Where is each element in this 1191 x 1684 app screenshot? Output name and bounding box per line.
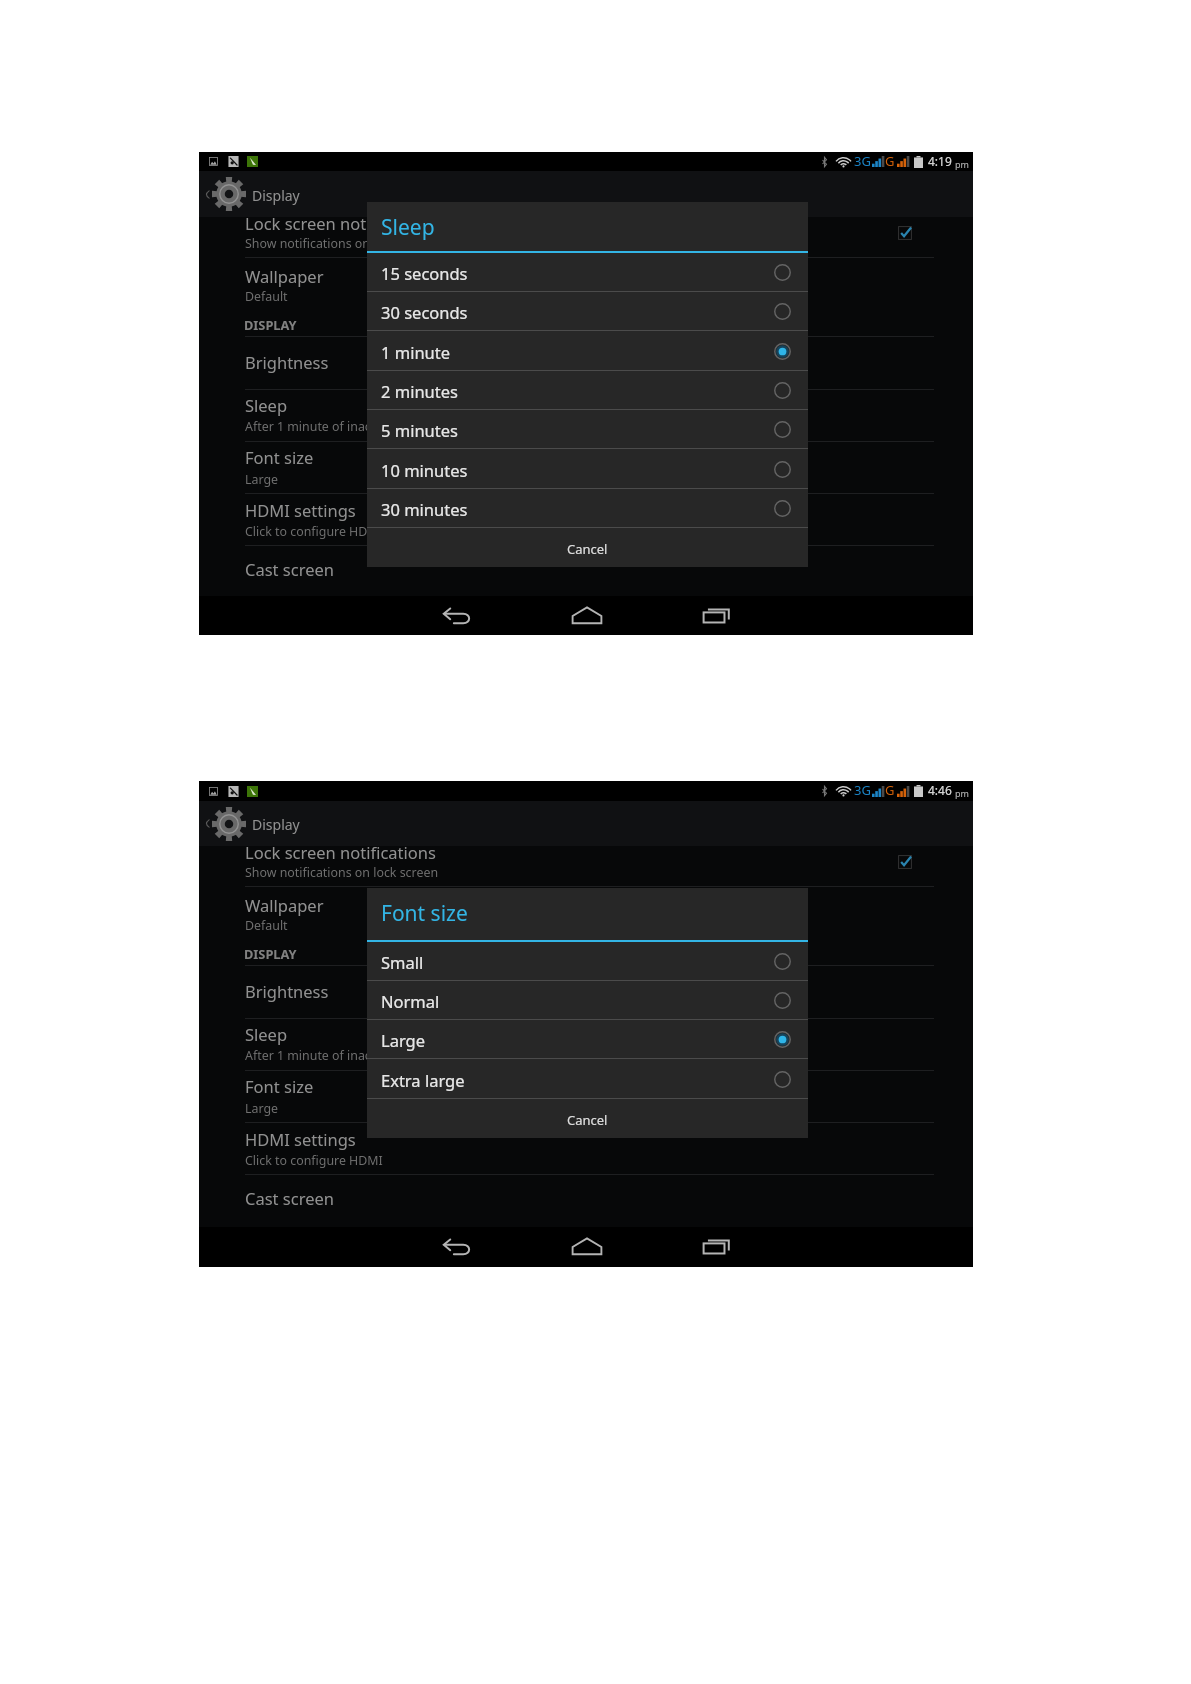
- button[interactable]: Cast screen: [199, 546, 973, 596]
- button[interactable]: Normal: [367, 981, 808, 1020]
- button[interactable]: Font size: [199, 1071, 973, 1123]
- button[interactable]: Recent apps: [652, 596, 783, 635]
- button[interactable]: Brightness: [199, 336, 973, 390]
- staticText: Font size: [245, 1075, 314, 1097]
- staticText: Extra large: [381, 1069, 465, 1091]
- staticText: Cast screen: [245, 1187, 334, 1209]
- button[interactable]: Large: [367, 1020, 808, 1059]
- button[interactable]: Wallpaper: [199, 258, 973, 302]
- staticText: Font size: [245, 446, 314, 468]
- staticText: HDMI settings: [245, 1128, 356, 1150]
- staticText: Large: [381, 1029, 426, 1051]
- staticText: G: [885, 781, 895, 799]
- button[interactable]: Small: [367, 942, 808, 981]
- staticText: 30 minutes: [381, 498, 468, 520]
- button[interactable]: Lock screen notifications: [199, 217, 973, 258]
- button[interactable]: Cancel: [367, 528, 808, 567]
- staticText: 3G: [854, 152, 871, 170]
- staticText: Wallpaper: [245, 894, 324, 916]
- button[interactable]: 15 seconds: [367, 253, 808, 292]
- staticText: Click to configure HDMI: [245, 523, 383, 540]
- button[interactable]: Back: [390, 596, 521, 635]
- staticText: Small: [381, 951, 424, 973]
- button[interactable]: 5 minutes: [367, 410, 808, 449]
- button[interactable]: Back: [390, 1227, 521, 1267]
- staticText: 30 seconds: [381, 301, 468, 323]
- button[interactable]: Recent apps: [652, 1227, 783, 1267]
- staticText: 4:46: [928, 782, 952, 798]
- staticText: DISPLAY: [244, 945, 297, 962]
- button[interactable]: 2 minutes: [367, 371, 808, 410]
- staticText: Large: [245, 471, 279, 488]
- staticText: HDMI settings: [245, 499, 356, 521]
- button[interactable]: 10 minutes: [367, 450, 808, 489]
- button[interactable]: Home: [521, 596, 652, 635]
- button[interactable]: Cast screen: [199, 1175, 973, 1227]
- staticText: G: [885, 152, 895, 170]
- staticText: 10 minutes: [381, 459, 468, 481]
- staticText: DISPLAY: [244, 316, 297, 333]
- button[interactable]: Brightness: [199, 965, 973, 1019]
- button[interactable]: HDMI settings: [199, 493, 973, 546]
- staticText: Wallpaper: [245, 265, 324, 287]
- staticText: Default: [245, 917, 288, 934]
- staticText: Brightness: [245, 351, 329, 373]
- button[interactable]: Wallpaper: [199, 887, 973, 931]
- button[interactable]: 30 seconds: [367, 292, 808, 331]
- staticText: 1 minute: [381, 341, 451, 363]
- staticText: 3G: [854, 781, 871, 799]
- staticText: 15 seconds: [381, 262, 468, 284]
- staticText: Sleep: [245, 1023, 288, 1045]
- staticText: Brightness: [245, 980, 329, 1002]
- staticText: pm: [955, 158, 969, 170]
- staticText: Normal: [381, 990, 440, 1012]
- staticText: Default: [245, 288, 288, 305]
- button[interactable]: Home: [521, 1227, 652, 1267]
- staticText: 4:19: [928, 153, 952, 169]
- button[interactable]: Extra large: [367, 1060, 808, 1099]
- button[interactable]: Cancel: [367, 1099, 808, 1138]
- button[interactable]: Sleep: [199, 1019, 973, 1071]
- staticText: Display: [252, 186, 300, 205]
- staticText: Cast screen: [245, 558, 334, 580]
- button[interactable]: 30 minutes: [367, 489, 808, 528]
- staticText: 5 minutes: [381, 419, 458, 441]
- staticText: After 1 minute of inactivity: [245, 418, 399, 435]
- button[interactable]: Font size: [199, 442, 973, 494]
- button[interactable]: Lock screen notifications: [199, 846, 973, 887]
- staticText: Large: [245, 1100, 279, 1117]
- staticText: After 1 minute of inactivity: [245, 1047, 399, 1064]
- staticText: Cancel: [567, 1111, 608, 1129]
- button[interactable]: Display: [199, 171, 973, 217]
- staticText: Show notifications on lock screen: [245, 235, 439, 252]
- staticText: Click to configure HDMI: [245, 1152, 383, 1169]
- staticText: Lock screen notifications: [245, 212, 436, 234]
- staticText: pm: [955, 787, 969, 799]
- staticText: Font size: [381, 899, 468, 928]
- staticText: Lock screen notifications: [245, 841, 436, 863]
- staticText: Display: [252, 815, 300, 834]
- button[interactable]: Display: [199, 801, 973, 846]
- button[interactable]: Sleep: [199, 390, 973, 442]
- staticText: Sleep: [245, 394, 288, 416]
- staticText: Sleep: [381, 213, 435, 242]
- staticText: Show notifications on lock screen: [245, 864, 439, 881]
- button[interactable]: HDMI settings: [199, 1122, 973, 1175]
- staticText: 2 minutes: [381, 380, 458, 402]
- button[interactable]: 1 minute: [367, 332, 808, 371]
- staticText: Cancel: [567, 540, 608, 558]
